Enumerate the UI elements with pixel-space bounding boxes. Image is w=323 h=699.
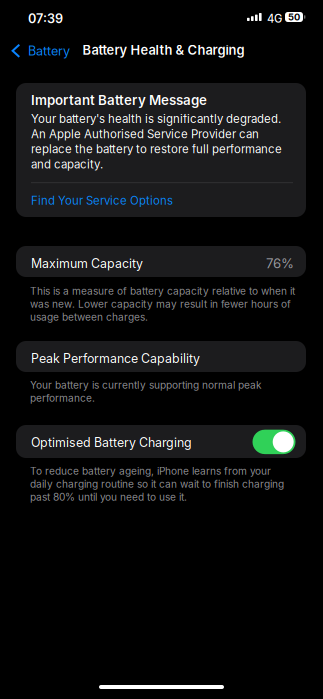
staticText: Maximum Capacity bbox=[31, 256, 143, 271]
staticText: 50 bbox=[288, 11, 300, 23]
staticText: replace the battery to restore full perf… bbox=[31, 142, 282, 156]
staticText: This is a measure of battery capacity re… bbox=[30, 285, 295, 297]
staticText: past 80% until you need to use it. bbox=[30, 491, 187, 503]
staticText: 07:39 bbox=[28, 11, 63, 26]
button[interactable]: Optimised Battery Charging, on bbox=[16, 425, 306, 458]
staticText: Peak Performance Capability bbox=[31, 351, 200, 366]
button[interactable]: Battery bbox=[0, 39, 78, 63]
staticText: usage between charges. bbox=[30, 311, 148, 323]
button[interactable]: Peak Performance Capability bbox=[16, 341, 306, 372]
staticText: performance. bbox=[30, 392, 95, 404]
staticText: Battery Health & Charging bbox=[82, 42, 244, 58]
staticText: Your battery is currently supporting nor… bbox=[30, 379, 262, 391]
staticText: daily charging routine so it can wait to… bbox=[30, 478, 284, 490]
staticText: To reduce battery ageing, iPhone learns … bbox=[30, 465, 271, 477]
staticText: Your battery's health is significantly d… bbox=[31, 112, 281, 126]
button[interactable]: Maximum Capacity, 76 percent bbox=[16, 246, 306, 277]
staticText: was new. Lower capacity may result in fe… bbox=[30, 298, 291, 310]
staticText: Find Your Service Options bbox=[31, 194, 173, 207]
staticText: Battery bbox=[28, 43, 70, 59]
staticText: An Apple Authorised Service Provider can bbox=[31, 127, 259, 141]
staticText: 4G bbox=[267, 12, 282, 26]
staticText: Important Battery Message bbox=[31, 92, 207, 108]
button[interactable]: Find Your Service Options bbox=[16, 83, 278, 118]
staticText: and capacity. bbox=[31, 157, 103, 171]
staticText: Optimised Battery Charging bbox=[31, 435, 192, 450]
staticText: 76% bbox=[266, 255, 294, 271]
